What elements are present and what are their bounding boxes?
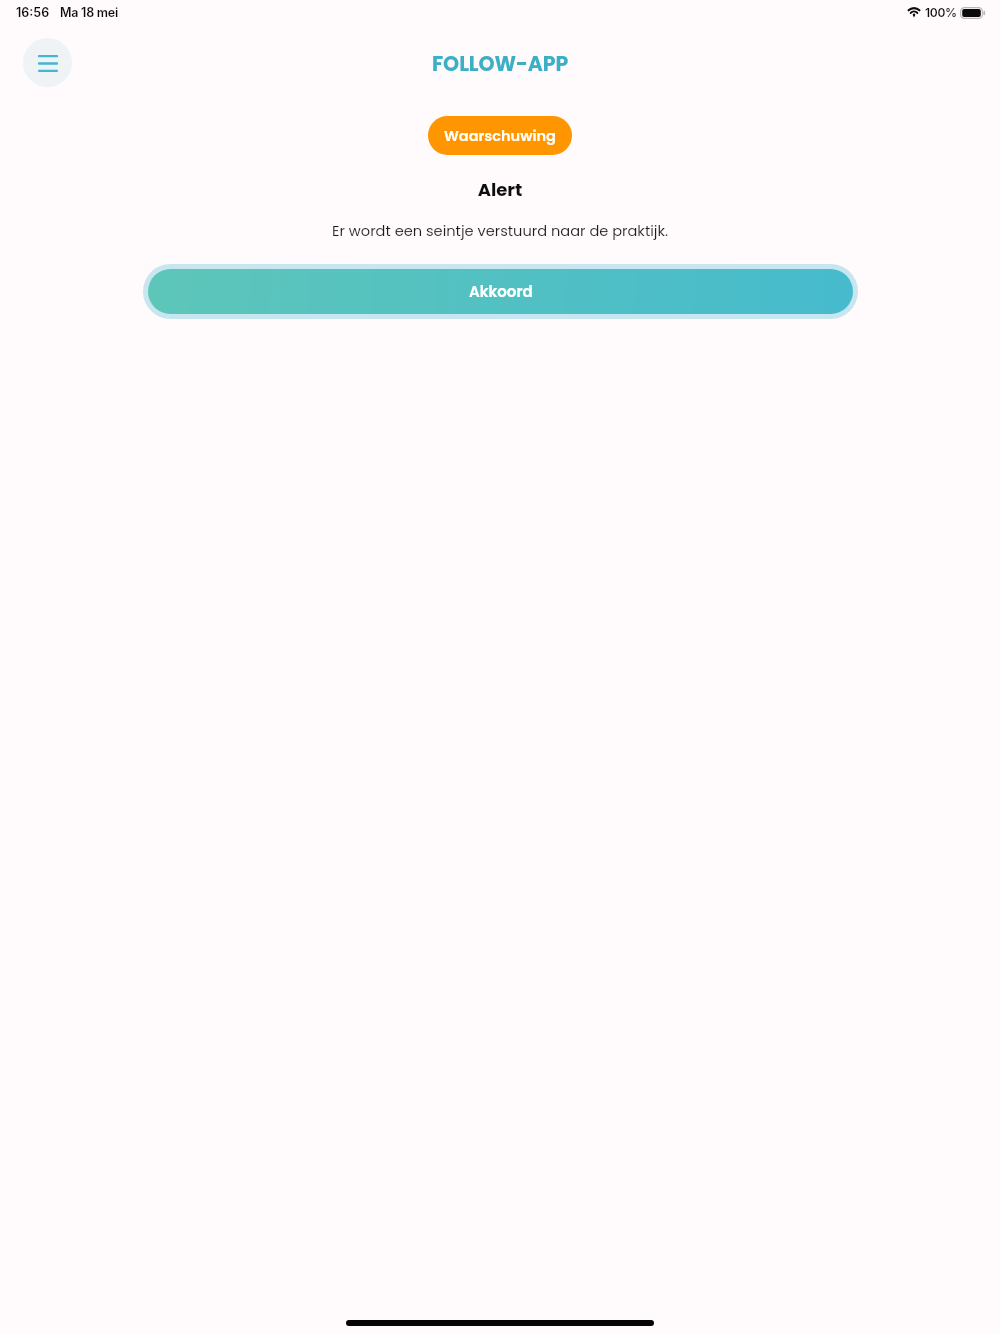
- other: Wi-Fi connected: [907, 7, 921, 18]
- staticText: Alert: [0, 177, 1000, 202]
- staticText: 16:56: [16, 5, 50, 20]
- staticText: FOLLOW-APP: [432, 49, 569, 78]
- staticText: Akkoord: [469, 281, 533, 302]
- staticText: Ma 18 mei: [60, 5, 118, 20]
- staticText: 100%: [925, 5, 957, 20]
- button[interactable]: Menu: [23, 38, 72, 87]
- button[interactable]: Akkoord: [143, 264, 858, 319]
- other: Battery full: [960, 7, 986, 19]
- staticText: Er wordt een seintje verstuurd naar de p…: [0, 221, 1000, 241]
- button[interactable]: Waarschuwing: [428, 116, 572, 155]
- staticText: Waarschuwing: [444, 126, 556, 146]
